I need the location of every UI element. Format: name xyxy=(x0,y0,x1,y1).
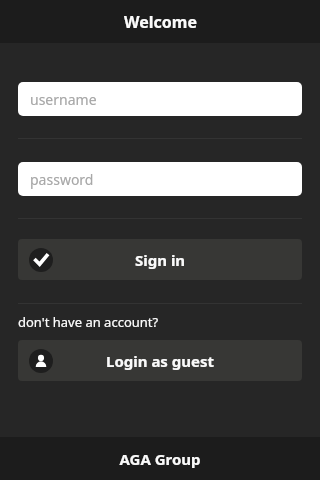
other: Login as guest xyxy=(29,349,53,373)
button[interactable]: Sign in xyxy=(18,239,302,280)
button[interactable]: username xyxy=(18,82,302,116)
staticText: password xyxy=(30,170,94,189)
staticText: AGA Group xyxy=(119,449,201,469)
staticText: Sign in xyxy=(135,250,186,270)
staticText: username xyxy=(30,90,97,109)
button[interactable]: password xyxy=(18,162,302,196)
staticText: don't have an account? xyxy=(18,313,159,331)
staticText: Login as guest xyxy=(106,351,215,371)
button[interactable]: Login as guest xyxy=(18,340,302,381)
staticText: Welcome xyxy=(124,11,197,33)
other: Sign in xyxy=(29,248,53,272)
